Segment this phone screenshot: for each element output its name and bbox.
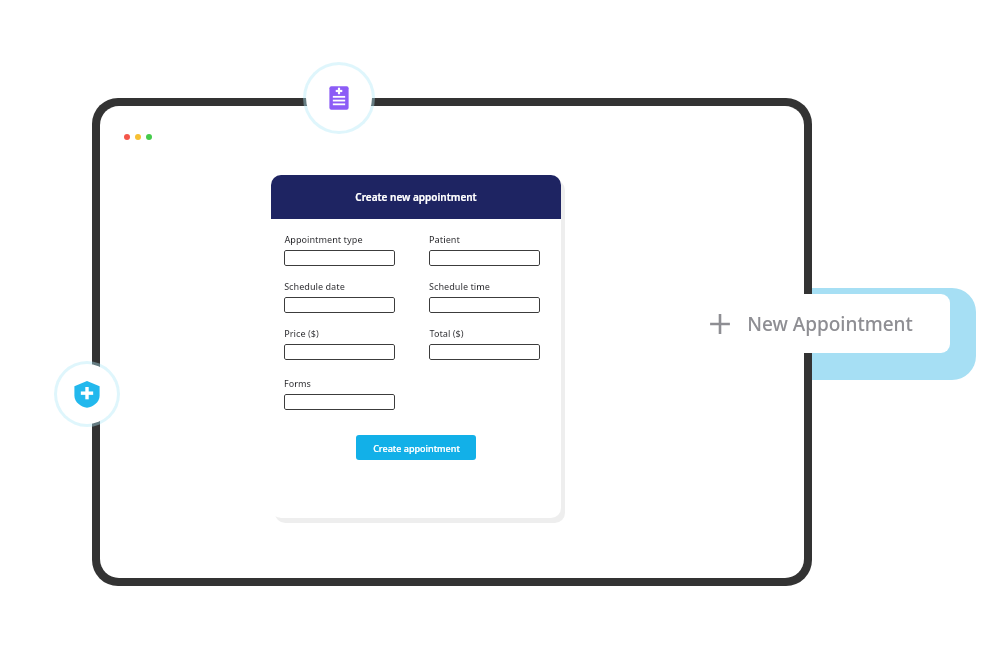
staticText: Total ($) — [429, 327, 464, 339]
staticText: Schedule time — [429, 280, 490, 292]
other: New document — [303, 62, 375, 134]
staticText: Create new appointment — [355, 190, 477, 204]
button[interactable] — [284, 297, 395, 313]
other: Insurance — [54, 361, 120, 427]
staticText: Price ($) — [284, 327, 319, 339]
staticText: Forms — [284, 377, 311, 389]
button[interactable] — [284, 344, 395, 360]
button[interactable] — [429, 344, 540, 360]
staticText: Create appointment — [373, 442, 460, 454]
button[interactable] — [284, 250, 395, 266]
button[interactable] — [429, 297, 540, 313]
button[interactable]: Create appointment — [356, 435, 476, 460]
staticText: New Appointment — [747, 311, 913, 337]
button[interactable] — [429, 250, 540, 266]
staticText: Appointment type — [284, 233, 363, 245]
button[interactable] — [284, 394, 395, 410]
staticText: Patient — [429, 233, 460, 245]
button[interactable]: New Appointment — [672, 294, 950, 353]
staticText: Schedule date — [284, 280, 345, 292]
